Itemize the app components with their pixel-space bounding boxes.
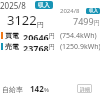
staticText: 収入 — [38, 1, 50, 9]
button[interactable]: 収入 — [86, 8, 100, 14]
staticText: 円 — [49, 43, 55, 51]
staticText: 円 — [94, 19, 100, 27]
staticText: 円 — [49, 32, 55, 40]
staticText: % — [44, 86, 49, 94]
staticText: 売電 — [5, 42, 19, 51]
staticText: 7499 — [73, 15, 94, 27]
staticText: 3122 — [7, 11, 37, 29]
staticText: 2024/8 — [60, 7, 80, 15]
button[interactable]: 自給率 — [2, 83, 49, 94]
staticText: (1250.9kWh) — [60, 42, 100, 51]
staticText: 142 — [30, 83, 44, 94]
staticText: 2025/8 — [0, 0, 26, 11]
button[interactable]: 買電 — [0, 31, 97, 40]
button[interactable]: 収入 — [35, 1, 53, 9]
staticText: 自給率 — [2, 85, 23, 94]
staticText: 詳細 — [80, 86, 90, 92]
button[interactable]: 詳細 — [77, 84, 92, 93]
staticText: 円 — [37, 20, 44, 29]
staticText: 買電 — [5, 31, 19, 40]
button[interactable]: 売電 — [0, 42, 100, 51]
staticText: (754.4kWh) — [60, 31, 97, 40]
staticText: 23768 — [23, 42, 49, 51]
staticText: 収入 — [89, 8, 98, 14]
staticText: 20646 — [23, 31, 49, 40]
